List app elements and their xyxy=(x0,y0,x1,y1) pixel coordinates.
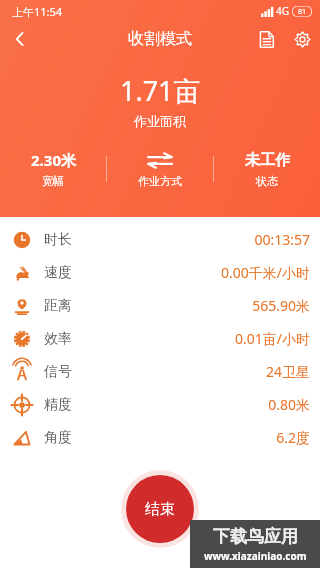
button[interactable]: 精度 xyxy=(0,388,320,421)
staticText: 1.71亩 xyxy=(120,72,201,109)
staticText: 未工作 xyxy=(245,151,290,170)
staticText: 6.2度 xyxy=(276,428,310,447)
staticText: 距离 xyxy=(44,297,72,315)
staticText: 下载鸟应用 xyxy=(213,526,298,547)
staticText: 2.30米 xyxy=(31,150,76,170)
button[interactable]: 距离 xyxy=(0,289,320,322)
staticText: www.xiazainiao.com xyxy=(204,549,307,563)
staticText: 24卫星 xyxy=(265,362,310,381)
staticText: 收割模式 xyxy=(128,29,192,49)
staticText: 上午11:54 xyxy=(12,4,63,19)
staticText: 速度 xyxy=(44,264,72,282)
staticText: 565.90米 xyxy=(252,296,310,315)
button[interactable]: 速度 xyxy=(0,256,320,289)
staticText: 00:13:57 xyxy=(254,230,310,249)
staticText: 角度 xyxy=(44,429,72,447)
button[interactable]: 2.30米 xyxy=(0,148,106,190)
button[interactable]: Back xyxy=(0,22,40,56)
button[interactable]: Settings xyxy=(284,22,320,56)
button[interactable]: 结束 xyxy=(121,470,199,548)
button[interactable]: 作业方式 xyxy=(107,148,213,190)
staticText: 4G xyxy=(276,4,289,18)
button[interactable]: 效率 xyxy=(0,322,320,355)
staticText: 0.80米 xyxy=(268,395,310,414)
button[interactable]: 角度 xyxy=(0,421,320,454)
staticText: 效率 xyxy=(44,330,72,348)
staticText: 状态 xyxy=(256,174,278,188)
staticText: 81 xyxy=(298,7,307,17)
staticText: 宽幅 xyxy=(42,174,64,188)
button[interactable]: 时长 xyxy=(0,223,320,256)
staticText: 时长 xyxy=(44,231,72,249)
button[interactable]: Records xyxy=(248,22,284,56)
staticText: 作业方式 xyxy=(138,174,182,188)
staticText: 作业面积 xyxy=(134,113,186,129)
staticText: 0.01亩/小时 xyxy=(235,329,310,348)
staticText: 结束 xyxy=(145,500,175,519)
button[interactable]: 信号 xyxy=(0,355,320,388)
button[interactable]: 未工作 xyxy=(214,148,320,190)
staticText: 精度 xyxy=(44,396,72,414)
staticText: 信号 xyxy=(44,363,72,381)
staticText: 0.00千米/小时 xyxy=(221,263,310,282)
